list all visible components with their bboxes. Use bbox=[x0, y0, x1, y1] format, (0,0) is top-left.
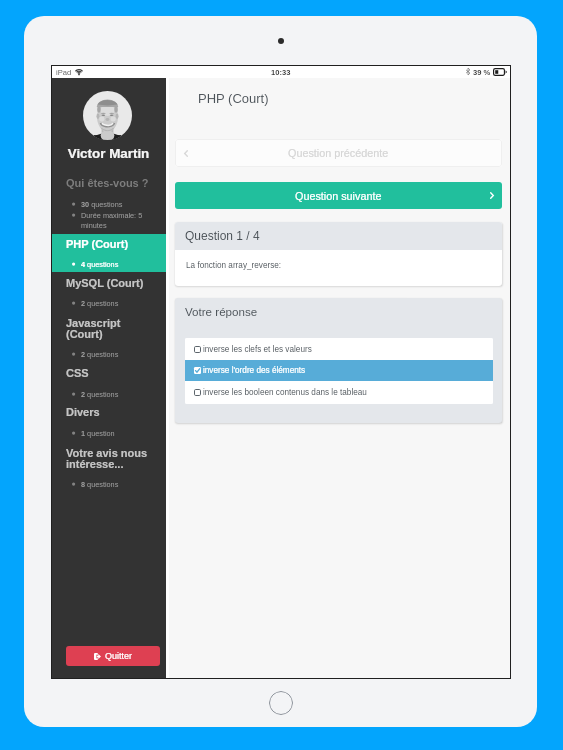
staticText: PHP (Court) bbox=[66, 238, 129, 250]
button[interactable]: Javascript (Court) bbox=[51, 317, 166, 341]
button[interactable] bbox=[51, 234, 166, 272]
staticText: Victor Martin bbox=[51, 146, 166, 161]
staticText: CSS bbox=[66, 367, 89, 379]
button[interactable]: MySQL (Court) bbox=[51, 277, 166, 289]
staticText: inverse les booleen contenus dans le tab… bbox=[203, 388, 367, 397]
button[interactable]: Qui êtes-vous ? bbox=[51, 177, 166, 189]
staticText: Javascript (Court) bbox=[66, 317, 151, 341]
button[interactable]: PHP (Court) bbox=[51, 238, 166, 250]
button[interactable]: CSS bbox=[51, 367, 166, 379]
button[interactable]: inverse l'ordre des éléments bbox=[185, 360, 493, 381]
button[interactable]: Question suivante bbox=[175, 182, 502, 209]
staticText: Question suivante bbox=[295, 190, 382, 202]
other: Bluetooth bbox=[466, 68, 470, 75]
staticText: iPad bbox=[56, 68, 72, 76]
staticText: MySQL (Court) bbox=[66, 277, 144, 289]
other: Log out bbox=[94, 653, 101, 660]
staticText: Qui êtes-vous ? bbox=[66, 177, 149, 189]
button[interactable]: Divers bbox=[51, 406, 166, 418]
staticText: La fonction array_reverse: bbox=[186, 261, 282, 270]
staticText: Quitter bbox=[105, 651, 133, 661]
button[interactable]: inverse les booleen contenus dans le tab… bbox=[185, 381, 493, 404]
staticText: Question 1 / 4 bbox=[185, 229, 260, 242]
staticText: 10:33 bbox=[271, 68, 291, 76]
staticText: Votre réponse bbox=[185, 305, 258, 318]
staticText: 1 question bbox=[81, 429, 115, 437]
staticText: PHP (Court) bbox=[198, 91, 269, 106]
staticText: 39 % bbox=[473, 68, 491, 76]
staticText: Divers bbox=[66, 406, 100, 418]
staticText: 4 questions bbox=[81, 260, 119, 268]
staticText: inverse l'ordre des éléments bbox=[203, 366, 306, 375]
staticText: 2 questions bbox=[81, 299, 119, 307]
button[interactable]: inverse les clefs et les valeurs bbox=[185, 338, 493, 360]
button[interactable]: Home bbox=[269, 691, 293, 715]
staticText: Votre avis nous intéresse... bbox=[66, 447, 151, 471]
staticText: 30 questions bbox=[81, 200, 123, 208]
other: Battery bbox=[493, 68, 507, 76]
staticText: inverse les clefs et les valeurs bbox=[203, 345, 312, 354]
staticText: 2 questions bbox=[81, 390, 119, 398]
other: Wi-Fi bbox=[75, 68, 83, 75]
staticText: Question précédente bbox=[288, 147, 389, 159]
staticText: 8 questions bbox=[81, 480, 119, 488]
button[interactable]: Votre avis nous intéresse... bbox=[51, 447, 166, 471]
staticText: Durée maximale: 5 minutes bbox=[81, 211, 143, 230]
button[interactable]: Log out bbox=[66, 646, 160, 666]
button[interactable]: Question précédente bbox=[175, 139, 502, 167]
staticText: 2 questions bbox=[81, 350, 119, 358]
other: Next question bbox=[490, 192, 494, 199]
other: Previous question bbox=[184, 150, 188, 157]
